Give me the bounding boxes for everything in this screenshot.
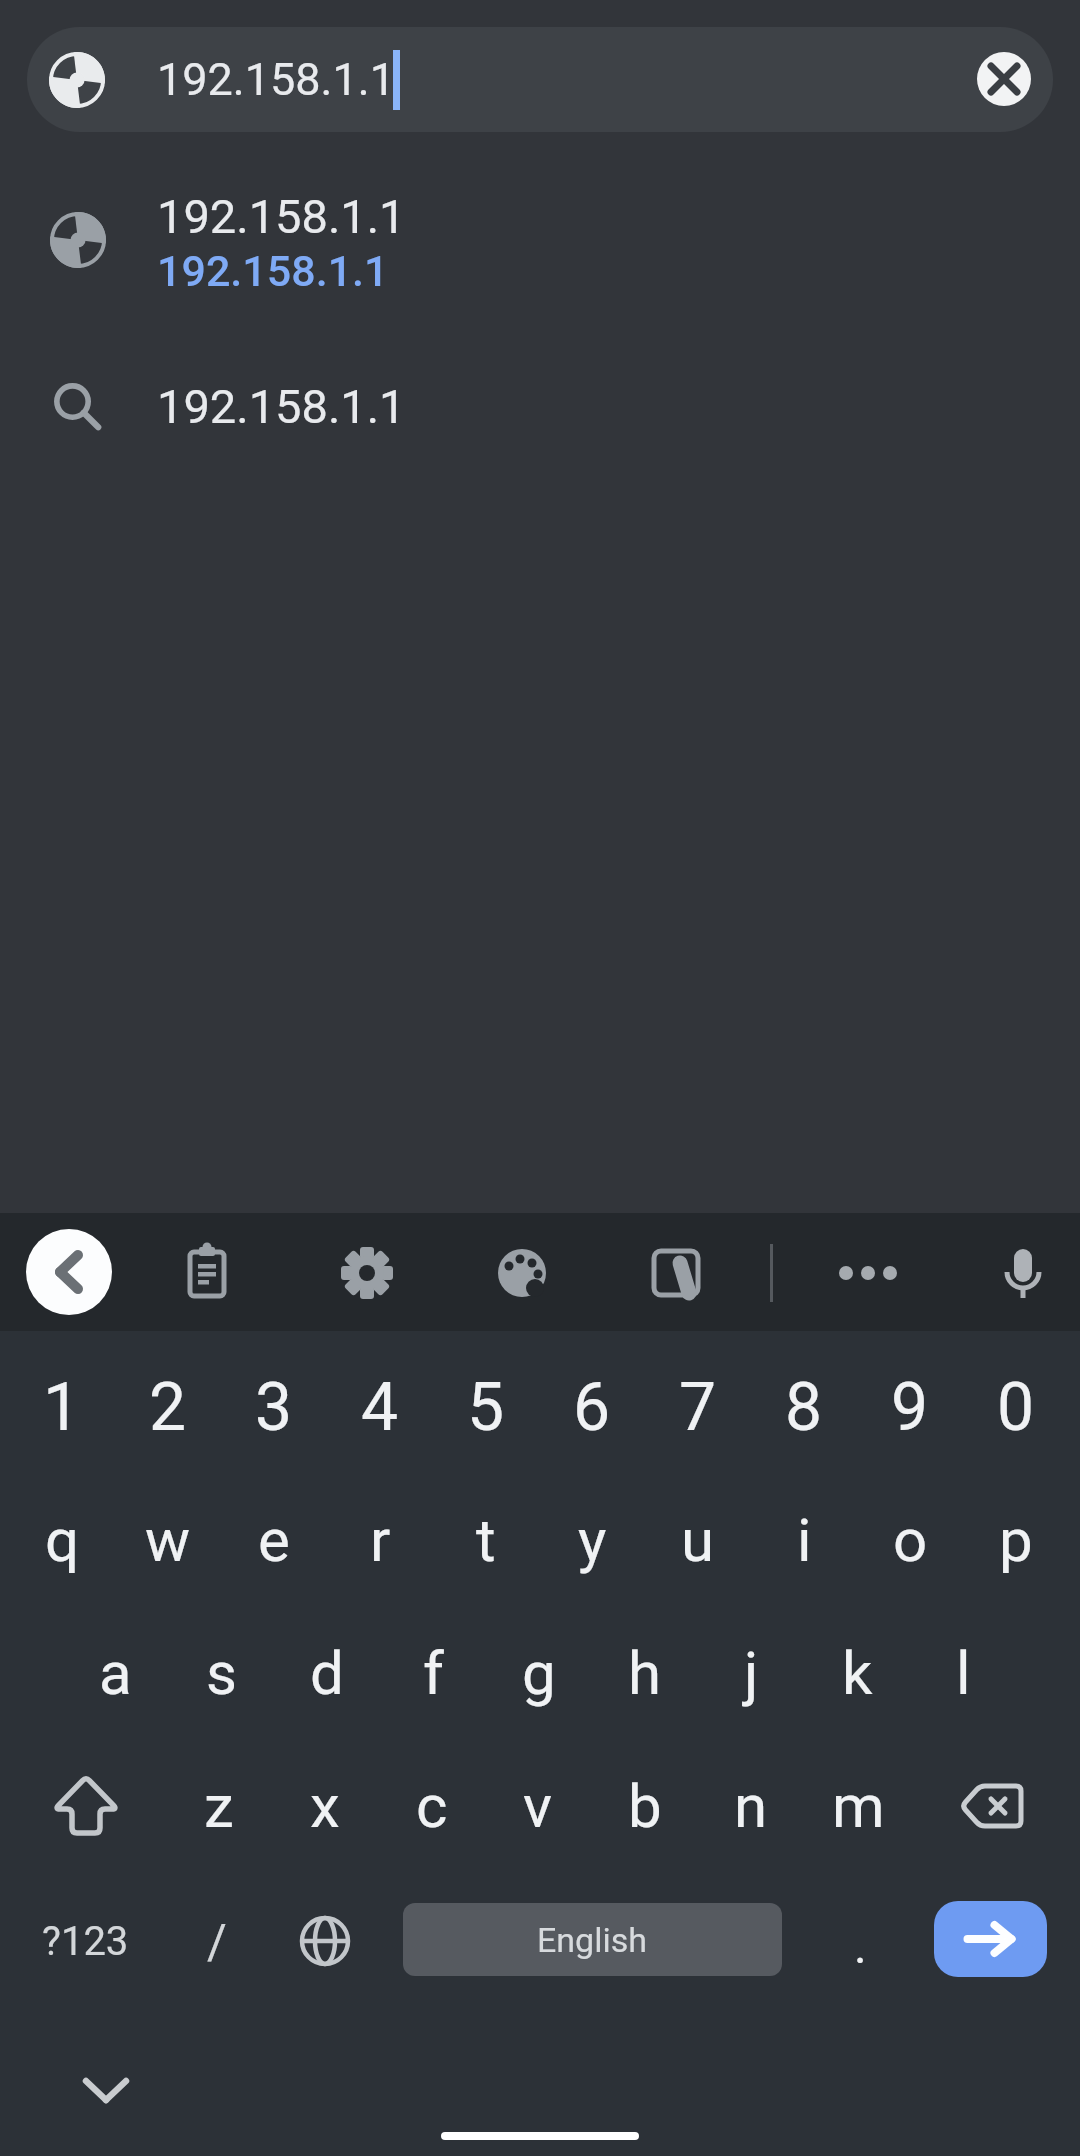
button[interactable]: 4: [330, 1344, 430, 1470]
button[interactable]: 192.158.1.1: [0, 166, 1080, 318]
staticText: f: [423, 1638, 444, 1708]
staticText: 192.158.1.1: [157, 53, 395, 106]
button[interactable]: ?123: [20, 1878, 150, 2004]
button[interactable]: n: [701, 1743, 801, 1869]
staticText: English: [537, 1920, 648, 1960]
staticText: a: [99, 1638, 132, 1708]
button[interactable]: 0: [966, 1344, 1066, 1470]
staticText: 1: [43, 1369, 81, 1446]
staticText: 5: [467, 1369, 505, 1446]
button[interactable]: [167, 1233, 247, 1313]
staticText: 3: [255, 1369, 293, 1446]
staticText: y: [578, 1505, 607, 1575]
button[interactable]: f: [383, 1610, 483, 1736]
button[interactable]: g: [489, 1610, 589, 1736]
button[interactable]: o: [860, 1477, 960, 1603]
staticText: g: [522, 1638, 556, 1708]
button[interactable]: [977, 52, 1031, 106]
staticText: j: [744, 1638, 759, 1708]
button[interactable]: b: [595, 1743, 695, 1869]
button[interactable]: 8: [754, 1344, 854, 1470]
staticText: 7: [679, 1369, 717, 1446]
button[interactable]: u: [648, 1477, 748, 1603]
button[interactable]: English: [403, 1903, 782, 1976]
staticText: n: [734, 1771, 768, 1841]
button[interactable]: l: [913, 1610, 1013, 1736]
button[interactable]: [327, 1233, 407, 1313]
button[interactable]: [636, 1233, 716, 1313]
button[interactable]: w: [118, 1477, 218, 1603]
staticText: 192.158.1.1: [157, 189, 406, 244]
button[interactable]: q: [12, 1477, 112, 1603]
staticText: e: [258, 1505, 290, 1575]
staticText: /: [207, 1913, 227, 1969]
button[interactable]: j: [701, 1610, 801, 1736]
button[interactable]: c: [382, 1743, 482, 1869]
staticText: i: [797, 1505, 812, 1575]
button[interactable]: x: [275, 1743, 375, 1869]
button[interactable]: 1: [12, 1344, 112, 1470]
button[interactable]: a: [65, 1610, 165, 1736]
button[interactable]: e: [224, 1477, 324, 1603]
button[interactable]: k: [807, 1610, 907, 1736]
button[interactable]: p: [966, 1477, 1066, 1603]
button[interactable]: [61, 2045, 151, 2135]
button[interactable]: [983, 1233, 1063, 1313]
staticText: k: [842, 1638, 873, 1708]
button[interactable]: y: [542, 1477, 642, 1603]
button[interactable]: .: [810, 1883, 910, 2009]
staticText: c: [416, 1771, 448, 1841]
staticText: d: [310, 1638, 344, 1708]
staticText: x: [310, 1771, 340, 1841]
staticText: o: [893, 1505, 928, 1575]
staticText: ?123: [42, 1918, 129, 1965]
staticText: 2: [149, 1369, 187, 1446]
button[interactable]: 192.158.1.1: [27, 27, 1053, 132]
staticText: s: [206, 1638, 237, 1708]
button[interactable]: [26, 1229, 112, 1315]
button[interactable]: 2: [118, 1344, 218, 1470]
button[interactable]: [934, 1901, 1047, 1977]
button[interactable]: s: [171, 1610, 271, 1736]
button[interactable]: d: [277, 1610, 377, 1736]
button[interactable]: [938, 1751, 1048, 1861]
button[interactable]: [31, 1751, 141, 1861]
staticText: m: [832, 1771, 885, 1841]
button[interactable]: [482, 1233, 562, 1313]
staticText: 6: [573, 1369, 611, 1446]
staticText: 8: [785, 1369, 823, 1446]
staticText: z: [204, 1771, 234, 1841]
button[interactable]: i: [754, 1477, 854, 1603]
button[interactable]: 192.158.1.1: [0, 346, 1080, 466]
button[interactable]: 7: [648, 1344, 748, 1470]
staticText: 4: [361, 1369, 399, 1446]
button[interactable]: 3: [224, 1344, 324, 1470]
staticText: u: [681, 1505, 715, 1575]
staticText: r: [370, 1505, 391, 1575]
button[interactable]: 9: [860, 1344, 960, 1470]
staticText: p: [999, 1505, 1033, 1575]
button[interactable]: [270, 1886, 380, 1996]
button[interactable]: v: [488, 1743, 588, 1869]
button[interactable]: h: [595, 1610, 695, 1736]
staticText: v: [523, 1771, 553, 1841]
staticText: l: [956, 1638, 971, 1708]
staticText: q: [45, 1505, 80, 1575]
staticText: 9: [891, 1369, 929, 1446]
staticText: h: [628, 1638, 662, 1708]
staticText: w: [145, 1505, 191, 1575]
button[interactable]: t: [436, 1477, 536, 1603]
staticText: 0: [997, 1369, 1035, 1446]
button[interactable]: m: [808, 1743, 908, 1869]
button[interactable]: r: [330, 1477, 430, 1603]
button[interactable]: 6: [542, 1344, 642, 1470]
button[interactable]: z: [169, 1743, 269, 1869]
button[interactable]: [828, 1233, 908, 1313]
button[interactable]: 5: [436, 1344, 536, 1470]
staticText: 192.158.1.1: [157, 379, 406, 434]
staticText: b: [628, 1771, 662, 1841]
staticText: t: [476, 1505, 496, 1575]
staticText: .: [854, 1918, 867, 1974]
staticText: 192.158.1.1: [157, 246, 389, 296]
button[interactable]: /: [167, 1878, 267, 2004]
